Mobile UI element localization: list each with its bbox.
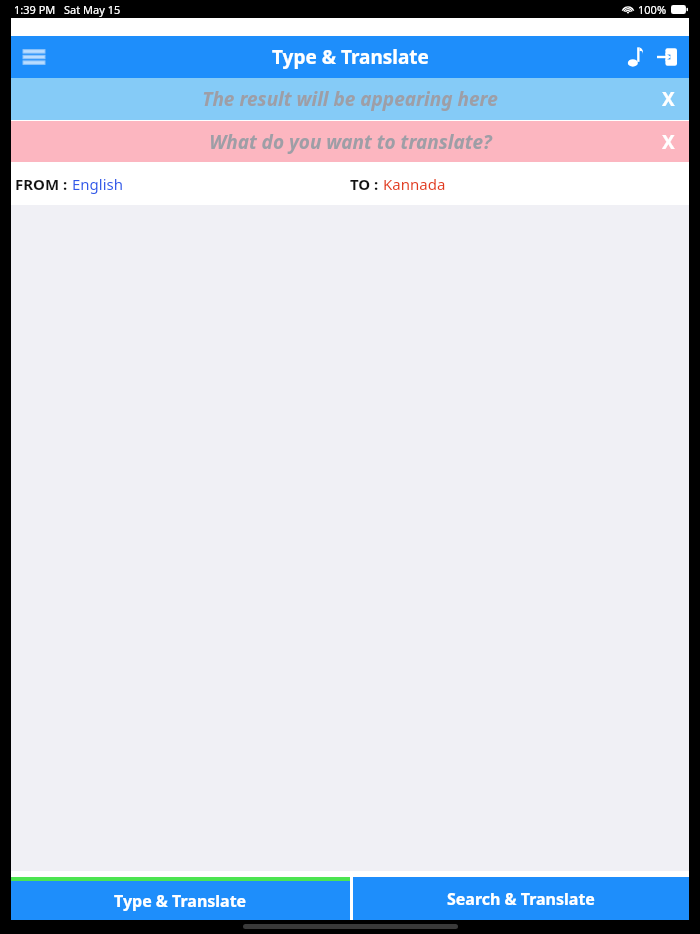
staticText: TO : <box>350 174 383 194</box>
button[interactable]: Search & Translate <box>353 877 689 920</box>
staticText: Sat May 15 <box>64 2 121 17</box>
button[interactable]: Clear result <box>651 82 685 116</box>
button[interactable]: The result will be appearing here <box>11 78 689 120</box>
staticText: The result will be appearing here <box>202 86 498 112</box>
button[interactable]: Clear input <box>651 125 685 159</box>
staticText: X <box>662 129 675 155</box>
button[interactable]: FROM : <box>15 174 124 194</box>
button[interactable]: What do you want to translate? <box>11 121 689 162</box>
staticText: Search & Translate <box>447 888 595 910</box>
staticText: 1:39 PM <box>14 2 56 17</box>
staticText: Kannada <box>383 174 446 194</box>
staticText: English <box>72 174 124 194</box>
staticText: Type & Translate <box>114 890 247 912</box>
staticText: What do you want to translate? <box>209 129 492 155</box>
button[interactable]: Menu <box>17 40 51 74</box>
staticText: 100% <box>638 2 667 17</box>
staticText: X <box>662 86 675 112</box>
staticText: FROM : <box>15 174 72 194</box>
button[interactable]: Sound <box>620 42 650 72</box>
button[interactable]: Type & Translate <box>11 877 350 920</box>
button[interactable]: TO : <box>350 174 446 194</box>
button[interactable]: Sign in <box>652 42 682 72</box>
staticText: Type & Translate <box>272 44 429 70</box>
